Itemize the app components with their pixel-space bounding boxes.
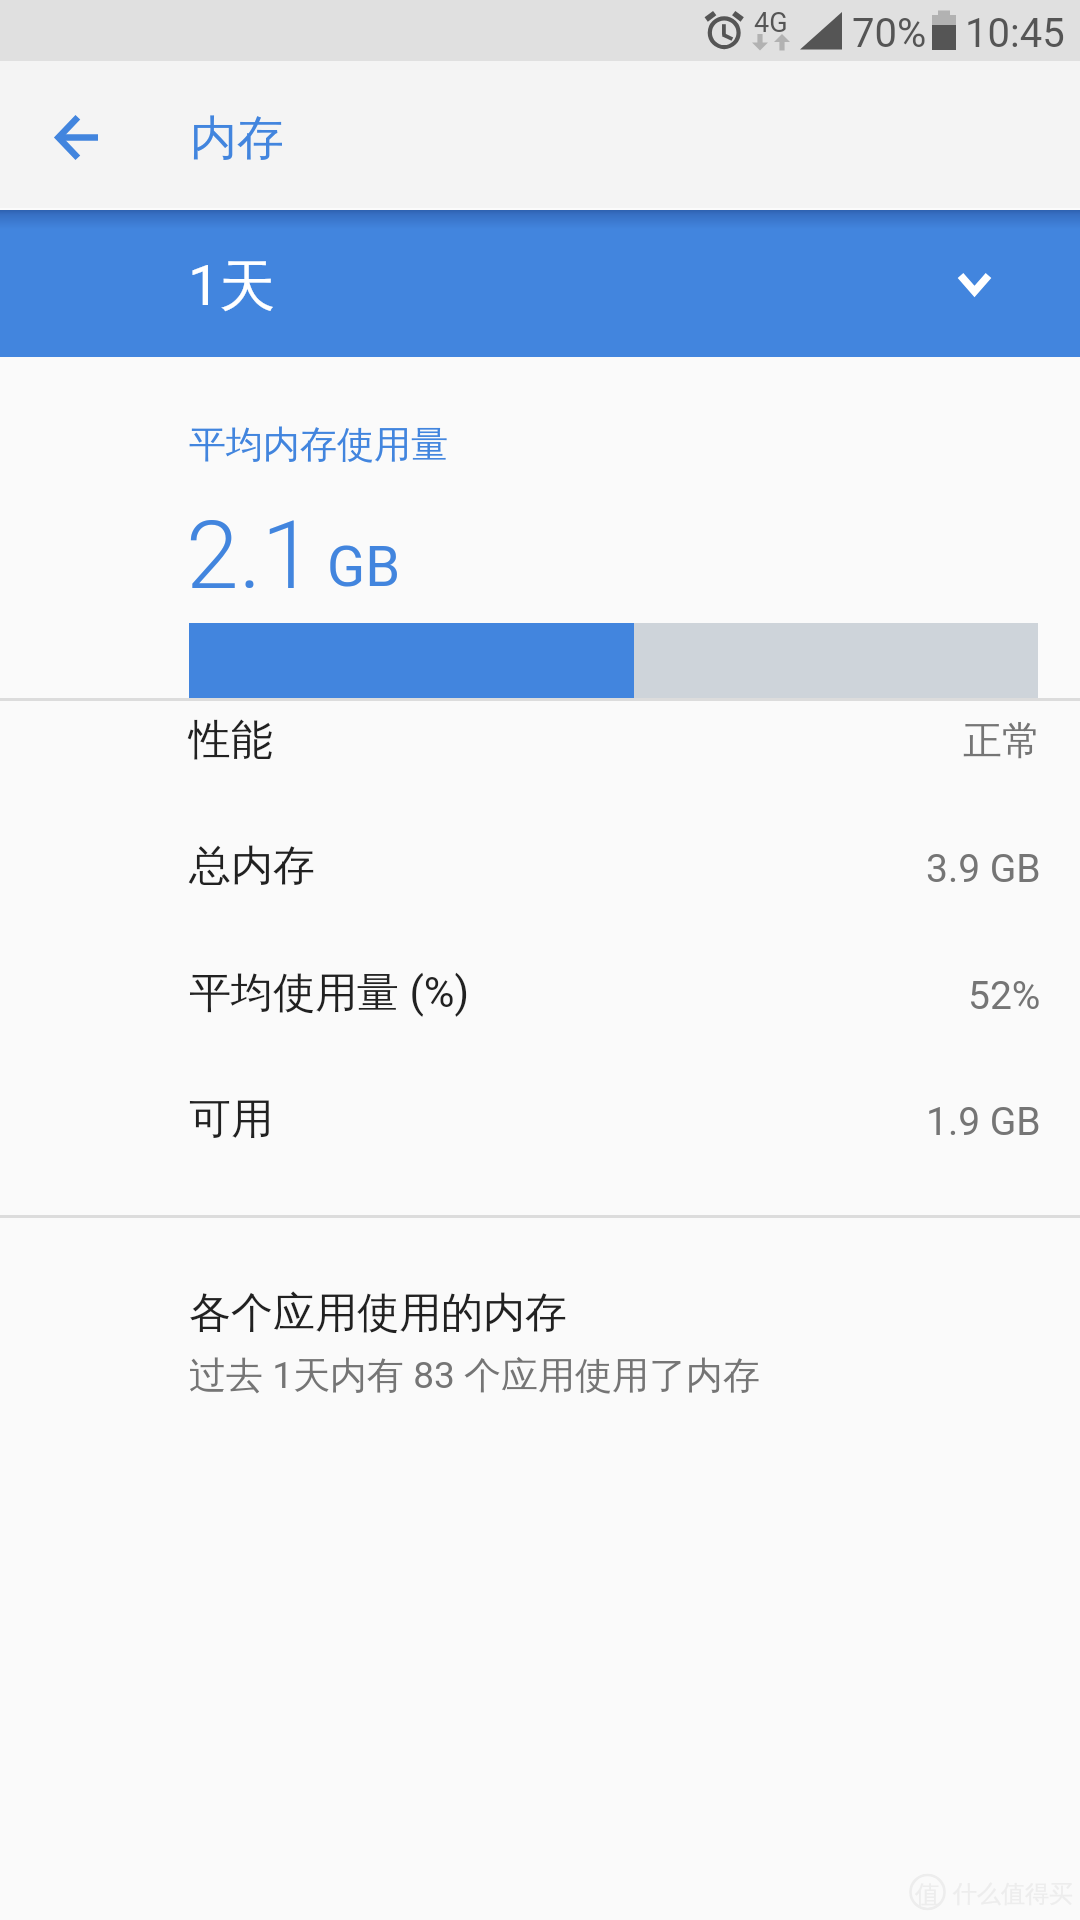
staticText: 4G xyxy=(754,7,788,39)
staticText: 3.9 GB xyxy=(926,846,1041,892)
button[interactable]: 1天 xyxy=(0,210,1080,357)
staticText: 平均内存使用量 xyxy=(189,421,448,468)
staticText: GB xyxy=(327,534,401,600)
button[interactable]: Back xyxy=(14,63,140,211)
staticText: 性能 xyxy=(189,714,273,767)
staticText: 平均使用量 (%) xyxy=(189,967,470,1020)
other: Expand time range xyxy=(957,272,992,295)
button[interactable]: 性能 xyxy=(0,677,1080,803)
staticText: 1天 xyxy=(188,251,276,322)
button[interactable]: 总内存 xyxy=(0,803,1080,929)
staticText: 可用 xyxy=(189,1093,273,1146)
staticText: 各个应用使用的内存 xyxy=(189,1287,567,1340)
button[interactable]: 平均使用量 (%) xyxy=(0,930,1080,1056)
staticText: 过去 1天内有 83 个应用使用了内存 xyxy=(189,1352,760,1399)
staticText: 10:45 xyxy=(965,10,1065,57)
staticText: 正常 xyxy=(963,716,1041,765)
staticText: 52% xyxy=(968,973,1041,1019)
staticText: 2.1 xyxy=(186,500,315,611)
button[interactable]: 可用 xyxy=(0,1056,1080,1182)
staticText: 值 xyxy=(915,1879,940,1910)
button[interactable]: 各个应用使用的内存 xyxy=(0,1260,1080,1425)
staticText: 1.9 GB xyxy=(926,1099,1041,1145)
staticText: 内存 xyxy=(190,109,284,168)
staticText: 70% xyxy=(852,10,927,57)
staticText: 总内存 xyxy=(189,840,315,893)
staticText: 什么值得买 xyxy=(953,1879,1073,1909)
